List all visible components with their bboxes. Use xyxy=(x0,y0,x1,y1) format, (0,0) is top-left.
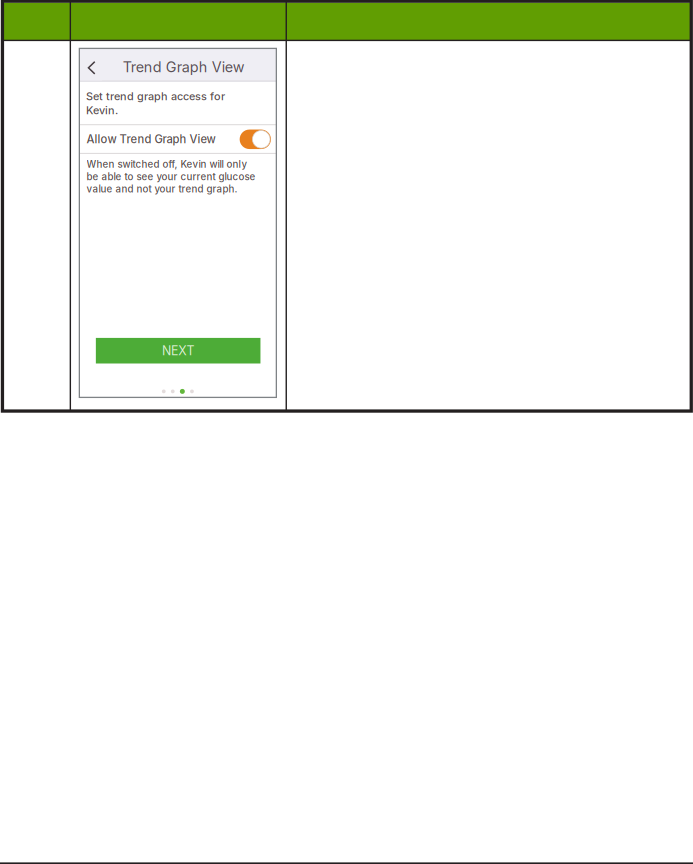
button[interactable]: Back xyxy=(80,48,102,80)
button[interactable]: NEXT xyxy=(96,338,260,363)
staticText: be able to see your current glucose xyxy=(86,171,255,182)
staticText: When switched off, Kevin will only xyxy=(86,158,247,170)
staticText: NEXT xyxy=(162,343,194,358)
button[interactable]: Allow Trend Graph View xyxy=(79,125,276,153)
staticText: value and not your trend graph. xyxy=(86,183,237,195)
staticText: Allow Trend Graph View xyxy=(86,132,215,146)
staticText: Set trend graph access for xyxy=(86,90,225,103)
staticText: Kevin. xyxy=(86,104,118,117)
staticText: Trend Graph View xyxy=(123,58,245,76)
